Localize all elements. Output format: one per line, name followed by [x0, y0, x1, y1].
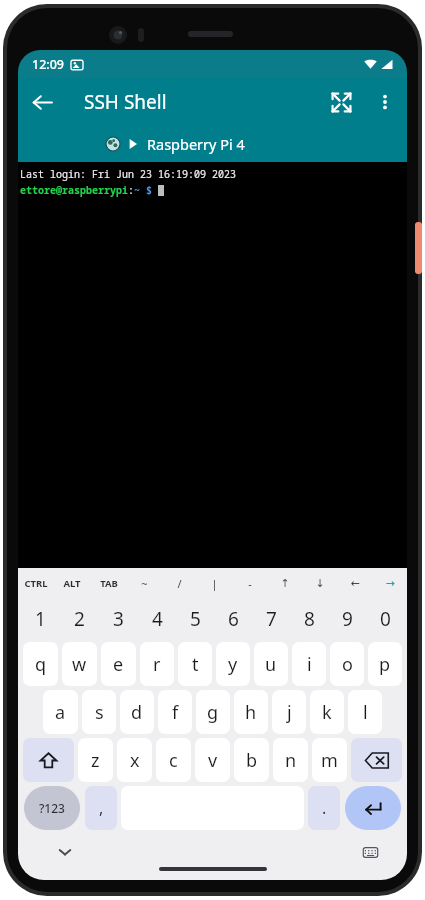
button[interactable]: 8	[290, 598, 328, 640]
button[interactable]: y	[216, 642, 250, 686]
staticText: ↓	[315, 577, 325, 590]
button[interactable]: ↑	[267, 568, 302, 598]
button[interactable]: 7	[252, 598, 290, 640]
staticText: 4	[152, 606, 163, 632]
button[interactable]: g	[196, 690, 230, 734]
staticText: u	[265, 652, 277, 677]
button[interactable]: l	[348, 690, 382, 734]
button[interactable]: 5	[176, 598, 214, 640]
staticText: t	[192, 652, 199, 677]
staticText: Raspberry Pi 4	[147, 134, 245, 154]
staticText: 2	[74, 606, 85, 632]
button[interactable]: ↓	[302, 568, 337, 598]
staticText: d	[131, 700, 143, 725]
button[interactable]: -	[232, 568, 267, 598]
button[interactable]: →	[372, 568, 407, 598]
button[interactable]: f	[158, 690, 192, 734]
staticText: h	[245, 700, 257, 725]
button[interactable]: |	[197, 568, 232, 598]
button[interactable]: /	[162, 568, 197, 598]
button[interactable]: Hide keyboard	[50, 837, 80, 867]
button[interactable]: Last login: Fri Jun 23 16:19:09 2023	[18, 162, 407, 568]
staticText: j	[287, 700, 292, 725]
button[interactable]: n	[273, 738, 308, 782]
staticText: y	[228, 652, 238, 677]
button[interactable]: Backspace	[351, 738, 402, 782]
button[interactable]: w	[62, 642, 97, 686]
staticText: n	[285, 748, 297, 773]
staticText: 7	[266, 606, 277, 632]
button[interactable]: t	[178, 642, 212, 686]
button[interactable]: c	[156, 738, 191, 782]
button[interactable]: .	[308, 786, 340, 830]
staticText: z	[91, 748, 100, 773]
staticText: ←	[350, 577, 360, 590]
staticText: →	[385, 577, 395, 590]
staticText: TAB	[100, 577, 118, 590]
button[interactable]: e	[101, 642, 136, 686]
button[interactable]: s	[82, 690, 116, 734]
staticText: 12:09	[32, 56, 65, 73]
button[interactable]: v	[195, 738, 230, 782]
staticText: |	[211, 576, 218, 591]
staticText: ?123	[39, 800, 65, 816]
button[interactable]: ALT	[54, 568, 90, 598]
staticText: Last login: Fri Jun 23 16:19:09 2023	[20, 167, 236, 181]
button[interactable]: o	[330, 642, 364, 686]
staticText: v	[208, 748, 218, 773]
staticText: :	[128, 183, 134, 197]
button[interactable]: Enter	[345, 786, 401, 830]
staticText: g	[207, 700, 219, 725]
button[interactable]: Back	[18, 78, 66, 126]
button[interactable]: ~	[127, 568, 162, 598]
staticText: b	[246, 748, 258, 773]
staticText: -	[248, 576, 252, 591]
button[interactable]: 6	[214, 598, 252, 640]
button[interactable]: a	[43, 690, 78, 734]
staticText: /	[177, 576, 182, 591]
button[interactable]: j	[272, 690, 306, 734]
button[interactable]: Shift	[23, 738, 74, 782]
staticText: w	[72, 652, 87, 677]
button[interactable]: x	[117, 738, 152, 782]
staticText: r	[153, 652, 161, 677]
button[interactable]: Switch keyboard	[355, 837, 385, 867]
button[interactable]: 1	[21, 598, 60, 640]
button[interactable]: d	[120, 690, 154, 734]
button[interactable]: Fullscreen	[319, 80, 363, 124]
button[interactable]: 0	[366, 598, 404, 640]
button[interactable]: q	[23, 642, 58, 686]
staticText: p	[379, 652, 391, 677]
button[interactable]: Raspberry Pi 4	[18, 126, 407, 162]
staticText: q	[35, 652, 47, 677]
button[interactable]: r	[140, 642, 174, 686]
button[interactable]: z	[78, 738, 113, 782]
button[interactable]: h	[234, 690, 268, 734]
staticText: 8	[304, 606, 315, 632]
button[interactable]: TAB	[90, 568, 127, 598]
button[interactable]: i	[292, 642, 326, 686]
staticText: l	[363, 700, 368, 725]
staticText: ,	[99, 797, 104, 819]
button[interactable]: m	[312, 738, 347, 782]
button[interactable]: 9	[328, 598, 366, 640]
button[interactable]: b	[234, 738, 269, 782]
staticText: 6	[228, 606, 239, 632]
button[interactable]: p	[368, 642, 402, 686]
button[interactable]: ?123	[24, 786, 80, 830]
staticText: i	[307, 652, 312, 677]
button[interactable]: k	[310, 690, 344, 734]
button[interactable]: 2	[60, 598, 99, 640]
button[interactable]: CTRL	[18, 568, 54, 598]
staticText: 1	[35, 606, 46, 632]
button[interactable]: u	[254, 642, 288, 686]
staticText: 3	[113, 606, 124, 632]
staticText: 0	[380, 606, 391, 632]
button[interactable]: ,	[85, 786, 117, 830]
button[interactable]: 3	[99, 598, 138, 640]
button[interactable]: ←	[337, 568, 372, 598]
staticText: o	[342, 652, 353, 677]
button[interactable]: 4	[138, 598, 176, 640]
button[interactable]: More options	[363, 80, 407, 124]
